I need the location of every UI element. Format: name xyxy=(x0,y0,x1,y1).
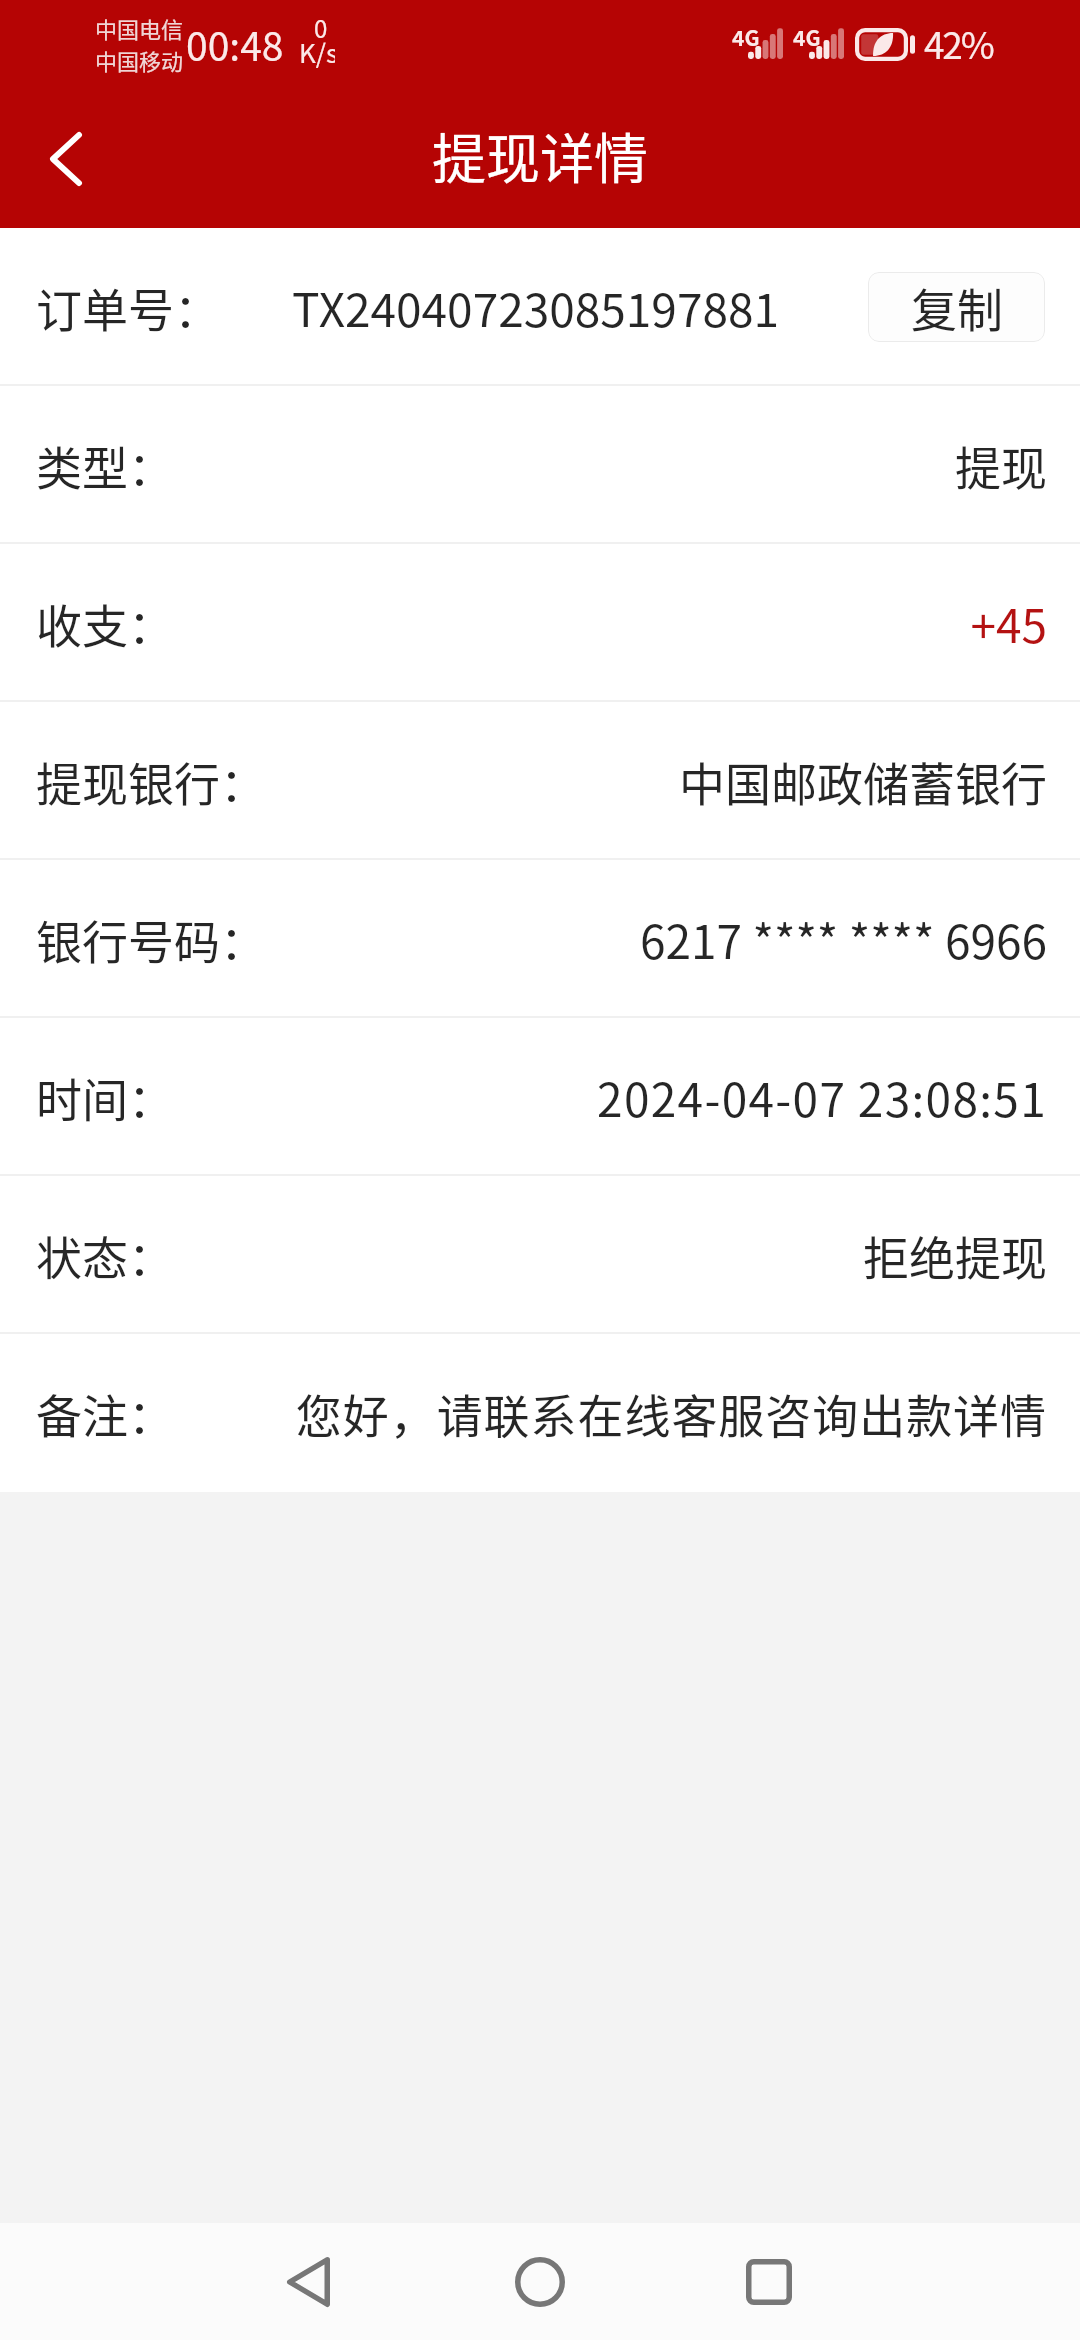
button[interactable]: 订单号： xyxy=(0,228,1080,386)
button[interactable]: 收支： xyxy=(0,544,1080,702)
button[interactable]: Back xyxy=(0,92,130,228)
staticText: 拒绝提现 xyxy=(863,1222,1047,1289)
staticText: 提现详情 xyxy=(432,116,648,194)
staticText: 状态： xyxy=(36,1222,174,1289)
button[interactable]: 状态： xyxy=(0,1176,1080,1334)
staticText: 提现银行： xyxy=(36,748,266,815)
staticText: 收支： xyxy=(36,590,174,657)
staticText: 00:48 xyxy=(186,16,284,72)
button[interactable]: 银行号码： xyxy=(0,860,1080,1018)
staticText: +45 xyxy=(970,590,1047,657)
staticText: 备注： xyxy=(36,1380,174,1447)
staticText: 2024-04-07 23:08:51 xyxy=(597,1064,1047,1131)
staticText: 6217 **** **** 6966 xyxy=(639,906,1047,973)
staticText: 时间： xyxy=(36,1064,174,1131)
staticText: 中国电信 xyxy=(95,12,184,44)
staticText: 0 xyxy=(314,10,328,45)
staticText: 中国移动 xyxy=(95,44,184,76)
staticText: 提现 xyxy=(955,432,1047,499)
button[interactable]: 提现银行： xyxy=(0,702,1080,860)
button[interactable]: 复制 xyxy=(868,272,1045,342)
staticText: 复制 xyxy=(911,274,1003,341)
staticText: 类型： xyxy=(36,432,174,499)
staticText: 银行号码： xyxy=(36,906,266,973)
button[interactable]: 类型： xyxy=(0,386,1080,544)
button[interactable]: Home xyxy=(480,2223,600,2340)
staticText: 42% xyxy=(924,16,993,70)
staticText: 您好，请联系在线客服咨询出款详情 xyxy=(295,1380,1047,1447)
staticText: 中国邮政储蓄银行 xyxy=(679,748,1047,815)
button[interactable]: Back xyxy=(248,2223,368,2340)
staticText: K/s xyxy=(299,33,335,71)
button[interactable]: 时间： xyxy=(0,1018,1080,1176)
staticText: TX24040723085197881 xyxy=(292,274,779,341)
staticText: 4G xyxy=(732,22,760,52)
staticText: 4G xyxy=(793,22,821,52)
button[interactable]: Recents xyxy=(709,2223,829,2340)
staticText: 订单号： xyxy=(36,274,220,341)
button[interactable]: 备注： xyxy=(0,1334,1080,1492)
